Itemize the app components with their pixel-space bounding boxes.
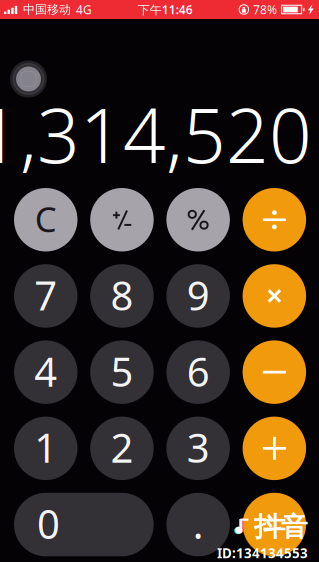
button[interactable]: Add — [243, 417, 306, 480]
staticText: 4 — [34, 345, 57, 398]
button[interactable]: 1 — [14, 417, 77, 480]
staticText: 中国移动 — [23, 2, 71, 17]
button[interactable]: Equals — [243, 493, 306, 556]
staticText: 下午11:46 — [138, 1, 193, 17]
button[interactable]: Divide — [243, 188, 306, 251]
staticText: 9 — [187, 268, 210, 321]
staticText: 3 — [187, 421, 210, 474]
staticText: 6 — [187, 345, 210, 398]
button[interactable]: Percent — [166, 188, 230, 251]
staticText: ID:134134553 — [217, 544, 308, 562]
button[interactable]: 5 — [90, 340, 154, 404]
button[interactable]: Subtract — [243, 340, 306, 404]
staticText: 78% — [253, 1, 277, 17]
button[interactable]: Plus minus — [90, 188, 154, 251]
staticText: 2 — [110, 421, 133, 474]
button[interactable]: 9 — [166, 264, 230, 328]
button[interactable]: 4 — [14, 340, 77, 404]
button[interactable]: 3 — [166, 417, 230, 480]
staticText: 8 — [110, 268, 133, 321]
button[interactable]: 0 — [14, 493, 154, 556]
button[interactable]: AssistiveTouch — [10, 60, 47, 97]
button[interactable]: Multiply — [243, 264, 306, 328]
staticText: 7 — [34, 268, 57, 321]
staticText: 5 — [110, 345, 133, 398]
button[interactable]: 6 — [166, 340, 230, 404]
button[interactable]: 7 — [14, 264, 77, 328]
staticText: 0 — [37, 497, 60, 550]
staticText: 抖音 — [254, 510, 308, 543]
button[interactable]: . — [166, 493, 230, 556]
button[interactable]: 2 — [90, 417, 154, 480]
staticText: C — [35, 196, 57, 242]
button[interactable]: Clear — [14, 188, 77, 251]
staticText: 4G — [76, 1, 92, 17]
staticText: 1,314,520 — [0, 84, 312, 184]
staticText: . — [193, 497, 204, 550]
button[interactable]: 8 — [90, 264, 154, 328]
staticText: 1 — [34, 421, 57, 474]
